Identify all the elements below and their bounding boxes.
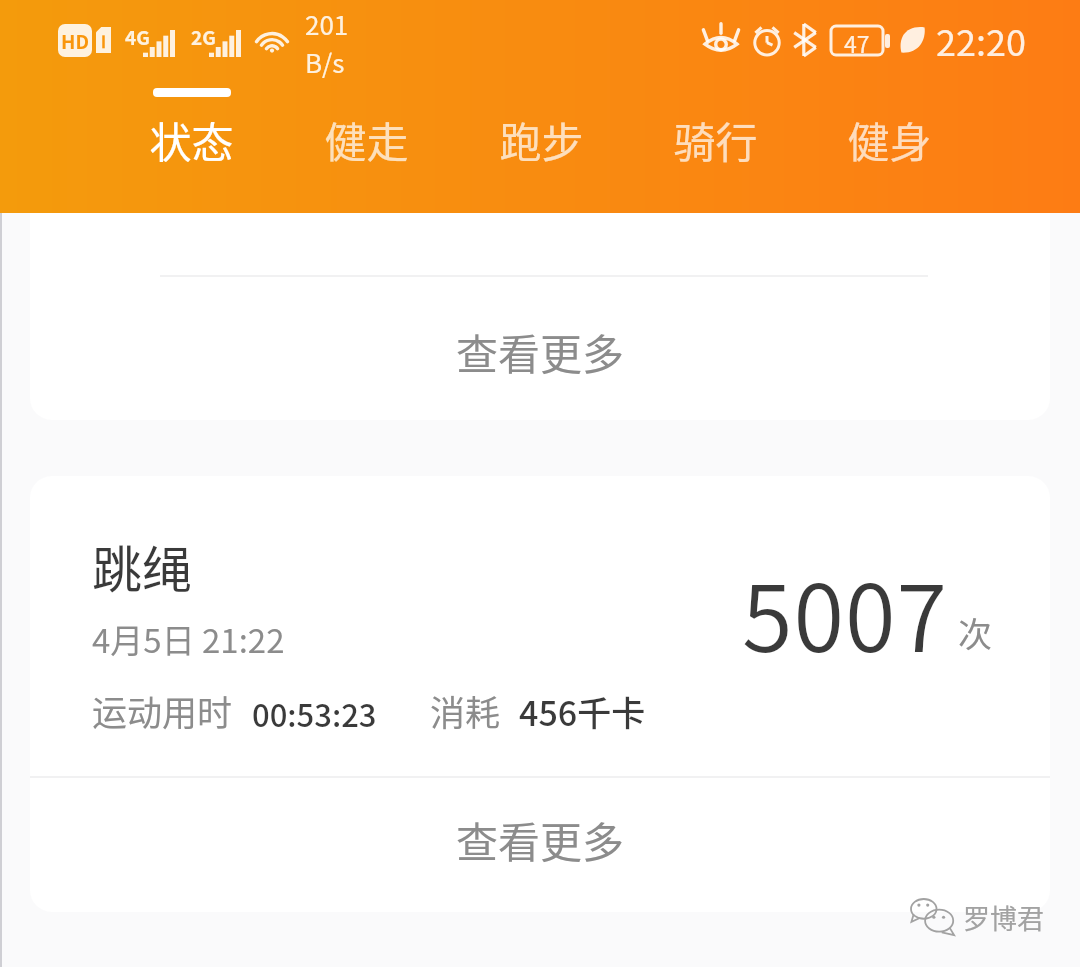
button[interactable]: 跑步 (454, 0, 628, 213)
other: Eye comfort (701, 23, 741, 57)
staticText: 跳绳 (92, 530, 192, 602)
staticText: 运动用时 (92, 685, 233, 736)
other: Bluetooth (793, 24, 817, 56)
button[interactable]: 骑行 (628, 0, 802, 213)
button[interactable]: 状态 (104, 0, 279, 213)
staticText: 5007 (742, 545, 949, 678)
staticText: HD (61, 27, 89, 55)
staticText: 00:53:23 (252, 691, 377, 736)
button[interactable]: 跳绳 (30, 476, 1050, 776)
staticText: 健身 (847, 109, 932, 170)
staticText: 456千卡 (519, 687, 646, 736)
button[interactable]: 健走 (279, 0, 454, 213)
staticText: 47 (844, 26, 870, 55)
staticText: 2G (191, 23, 216, 51)
staticText: 状态 (149, 109, 234, 170)
staticText: 查看更多 (456, 809, 625, 870)
staticText: 罗博君 (963, 898, 1044, 937)
staticText: 4月5日 21:22 (92, 615, 285, 663)
button[interactable]: 查看更多 (30, 778, 1050, 910)
other: Alarm (750, 23, 784, 57)
staticText: 骑行 (673, 109, 758, 170)
button[interactable]: 查看更多 (30, 277, 1050, 420)
button[interactable]: 健身 (802, 0, 976, 213)
staticText: 4G (125, 23, 150, 51)
staticText: 201 (305, 5, 349, 43)
staticText: 次 (958, 608, 992, 657)
staticText: 查看更多 (456, 321, 625, 382)
staticText: B/s (305, 43, 345, 81)
staticText: 跑步 (499, 109, 584, 170)
staticText: 消耗 (430, 685, 501, 736)
staticText: 22:20 (936, 14, 1026, 66)
staticText: 健走 (324, 109, 409, 170)
